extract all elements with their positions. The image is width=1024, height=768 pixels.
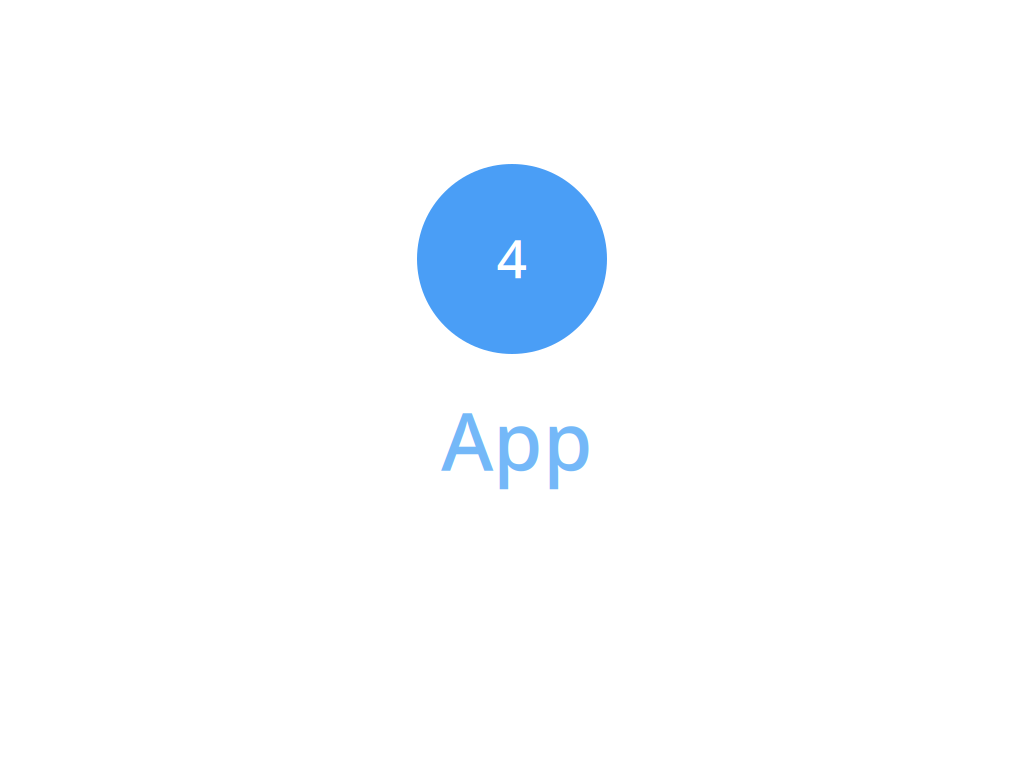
button[interactable]: 4: [0, 164, 1024, 492]
staticText: 4: [496, 222, 527, 293]
staticText: App: [441, 386, 593, 492]
